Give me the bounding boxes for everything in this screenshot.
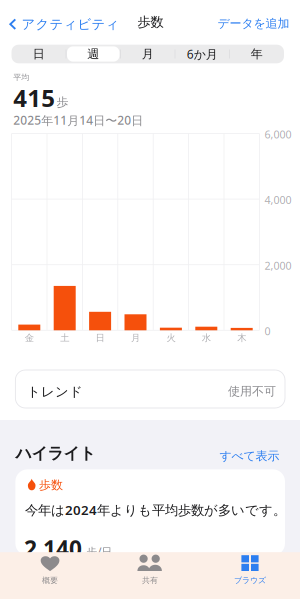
staticText: 6,000 [264,127,291,141]
button[interactable]: 6か月 [175,45,229,63]
staticText: 歩数 [39,478,63,492]
button[interactable]: ブラウズ [200,552,300,599]
staticText: 週 [87,47,99,61]
button[interactable]: 日 [11,45,66,63]
staticText: 日 [33,47,45,61]
staticText: 6か月 [187,46,218,62]
staticText: アクティビティ [22,16,120,32]
staticText: 日 [96,332,105,344]
staticText: 火 [166,332,175,344]
staticText: 概要 [42,575,58,585]
staticText: 415 [13,82,55,114]
staticText: 4,000 [264,193,291,207]
button[interactable]: 歩数 [15,469,285,555]
staticText: 木 [237,332,246,344]
staticText: 使用不可 [228,384,276,399]
staticText: 月 [142,47,154,61]
staticText: ブラウズ [234,575,266,585]
button[interactable]: トレンド [15,370,285,408]
staticText: 歩 [56,95,68,109]
staticText: 土 [60,332,69,344]
staticText: データを追加 [217,16,289,31]
staticText: 2025年11月14日〜20日 [13,112,143,128]
staticText: 水 [202,332,211,344]
staticText: 月 [131,332,140,344]
staticText: 歩/日 [86,544,112,559]
staticText: 2,140 [24,533,82,563]
button[interactable]: すべて表示 [214,445,284,467]
staticText: 歩数 [137,14,163,30]
staticText: 2,000 [264,258,291,273]
staticText: 共有 [142,575,158,585]
button[interactable]: データを追加 [209,8,297,39]
staticText: 0 [264,324,270,338]
staticText: 平均 [13,72,29,82]
staticText: 金 [25,332,34,344]
button[interactable]: アクティビティ [0,8,128,40]
button[interactable]: 週 [66,45,120,63]
button[interactable]: 年 [229,45,284,63]
staticText: トレンド [27,383,83,400]
button[interactable]: 概要 [0,552,100,599]
staticText: ハイライト [15,443,95,463]
staticText: 今年は2024年よりも平均歩数が多いです。 [25,501,286,519]
staticText: 年 [251,47,263,61]
button[interactable]: 月 [120,45,175,63]
staticText: すべて表示 [219,449,279,463]
button[interactable]: 共有 [100,552,200,599]
